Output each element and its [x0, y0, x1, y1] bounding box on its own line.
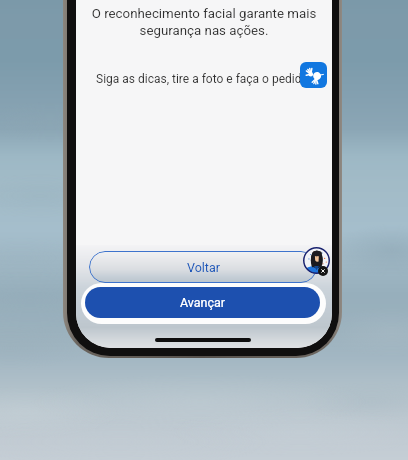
staticText: Siga as dicas, tire a foto e faça o pedi…	[96, 72, 309, 86]
staticText: Voltar	[187, 260, 220, 275]
button[interactable]: Fechar	[318, 266, 328, 276]
button[interactable]: Avançar	[85, 287, 320, 318]
button[interactable]: Voltar	[89, 251, 317, 283]
staticText: Avançar	[180, 295, 226, 310]
staticText: O reconhecimento facial garante mais seg…	[76, 6, 332, 39]
button[interactable]: Acessibilidade em Libras	[300, 62, 327, 88]
button[interactable]: Assistente virtual	[303, 247, 330, 274]
